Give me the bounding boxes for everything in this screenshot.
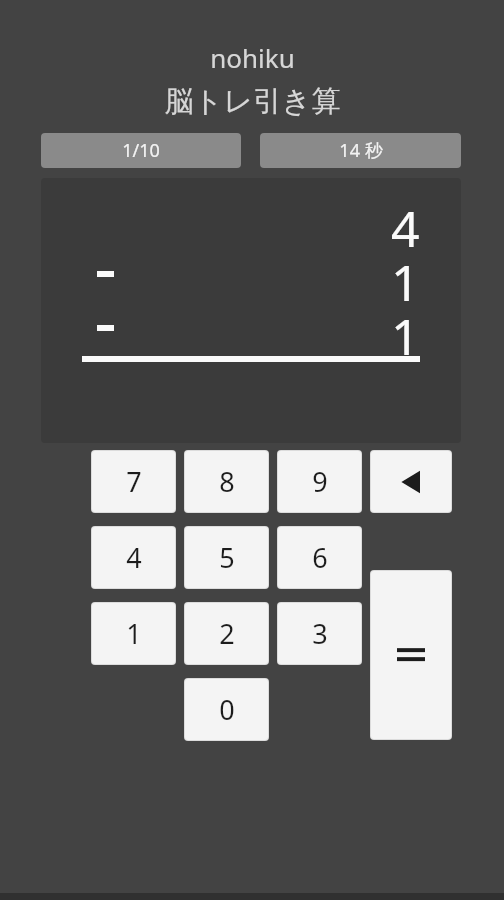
staticText: 5 <box>219 539 235 576</box>
button[interactable]: 0 <box>185 679 268 740</box>
staticText: 脳トレ引き算 <box>164 83 341 120</box>
button[interactable]: 2 <box>185 603 268 664</box>
button[interactable]: 7 <box>92 451 175 512</box>
staticText: 0 <box>219 691 235 728</box>
button[interactable]: 14 秒 <box>260 133 461 168</box>
staticText: 6 <box>312 539 328 576</box>
staticText: nohiku <box>210 40 295 75</box>
staticText: 4 <box>126 539 142 576</box>
staticText: 4 <box>391 194 420 262</box>
staticText: 1 <box>126 615 142 652</box>
staticText: 2 <box>219 615 235 652</box>
staticText: 14 秒 <box>339 138 383 163</box>
staticText: 9 <box>312 463 328 500</box>
button[interactable]: 9 <box>278 451 361 512</box>
button[interactable]: 4 <box>92 527 175 588</box>
staticText: 1 <box>391 248 420 316</box>
staticText: 1/10 <box>122 138 160 163</box>
button[interactable]: 3 <box>278 603 361 664</box>
button[interactable]: 6 <box>278 527 361 588</box>
staticText: 7 <box>126 463 142 500</box>
button[interactable]: Backspace <box>371 451 451 512</box>
button[interactable]: 8 <box>185 451 268 512</box>
button[interactable]: 1 <box>92 603 175 664</box>
staticText: 3 <box>312 615 328 652</box>
button[interactable]: Equals <box>371 571 451 739</box>
button[interactable]: 5 <box>185 527 268 588</box>
button[interactable]: 1/10 <box>41 133 241 168</box>
staticText: 1 <box>391 302 420 370</box>
staticText: 8 <box>219 463 235 500</box>
